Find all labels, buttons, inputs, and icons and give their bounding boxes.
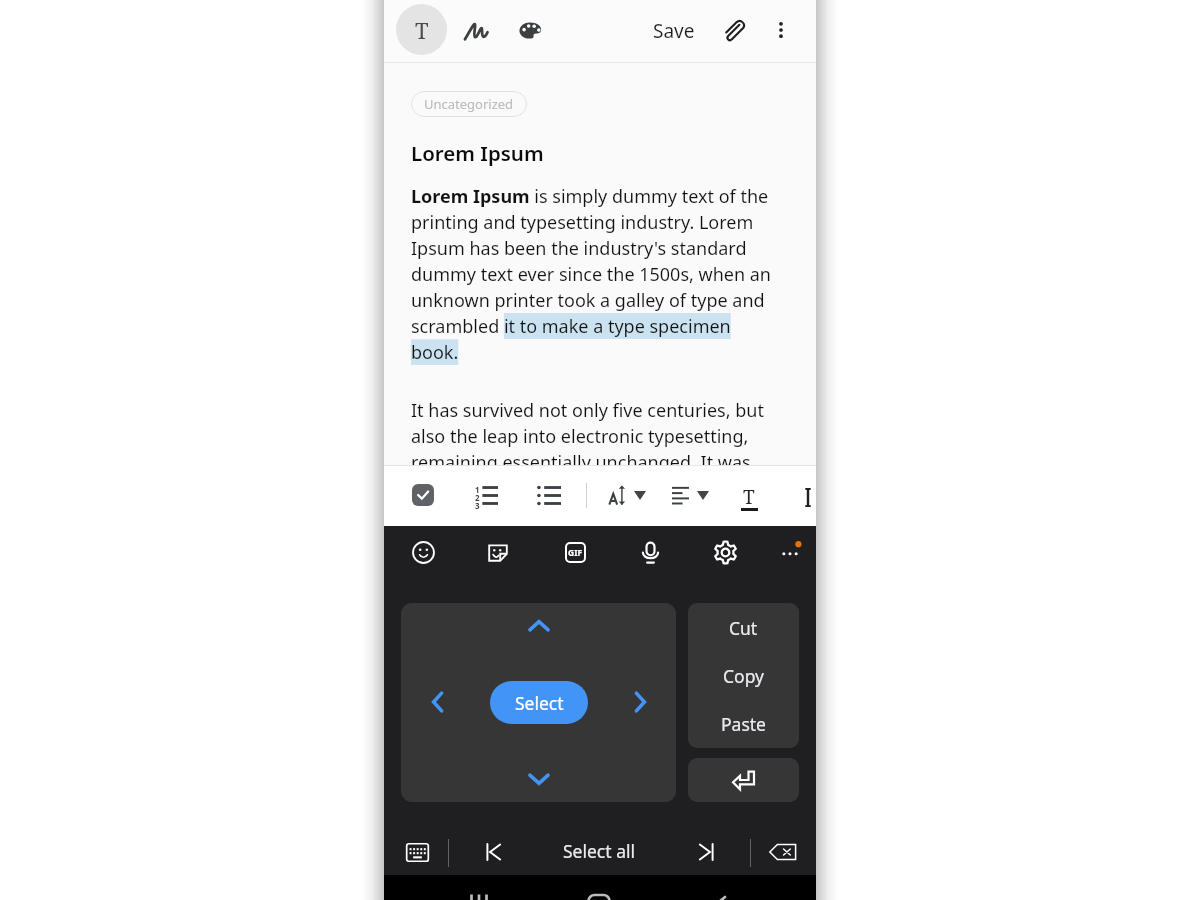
button[interactable]: Enter [688,758,799,802]
button[interactable]: GIF [553,531,595,573]
staticText: Copy [723,664,764,688]
button[interactable]: Underline [727,475,771,519]
button[interactable]: Keyboard [396,831,438,873]
button[interactable]: Move to end [685,831,727,873]
button[interactable]: Checklist [401,473,445,517]
staticText: 1 [475,484,480,495]
button[interactable]: Align [660,473,720,517]
staticText: Select all [563,839,635,863]
staticText: Paste [721,712,766,736]
button[interactable]: Backspace [762,831,804,873]
button[interactable]: Stickers [477,531,519,573]
button[interactable]: Right [621,683,659,721]
button[interactable]: Down [519,759,559,799]
staticText: Uncategorized [424,95,514,113]
button[interactable]: Uncategorized [411,91,527,117]
button[interactable]: Handwriting [456,10,496,50]
button[interactable]: Numbered list [464,473,508,517]
button[interactable]: Bulleted list [527,473,571,517]
staticText: It has survived not only five centuries,… [411,398,773,465]
button[interactable]: Voice input [629,531,671,573]
button[interactable]: Text style [786,475,830,519]
button[interactable]: Cut [688,604,799,652]
button[interactable]: Font size [599,473,655,517]
button[interactable]: Attach [715,12,755,52]
staticText: Lorem Ipsum [411,139,544,167]
staticText: GIF [568,547,583,559]
button[interactable]: Recents [464,887,494,900]
staticText: 3 [475,500,480,511]
button[interactable]: Home [584,887,614,900]
button[interactable]: Palette [510,10,550,50]
button[interactable]: Paste [688,700,799,748]
button[interactable]: Copy [688,652,799,700]
button[interactable]: Emoji [402,531,444,573]
staticText: Lorem Ipsum is simply dummy text of the … [411,184,773,365]
staticText: Select [515,691,564,715]
button[interactable]: Text mode [396,4,447,55]
button[interactable]: Up [519,606,559,646]
button[interactable]: Select [490,681,588,724]
button[interactable]: Move to start [473,831,515,873]
staticText: Save [653,18,695,44]
staticText: Cut [729,616,758,640]
button[interactable]: More options [761,10,801,50]
button[interactable]: Select all [559,831,639,871]
button[interactable]: Settings [704,531,746,573]
staticText: 2 [475,492,480,503]
button[interactable]: Left [419,683,457,721]
staticText: T [743,484,755,510]
button[interactable]: More [769,531,811,573]
button[interactable]: Save [647,11,701,51]
staticText: T [415,15,429,45]
button[interactable]: Back [704,887,734,900]
